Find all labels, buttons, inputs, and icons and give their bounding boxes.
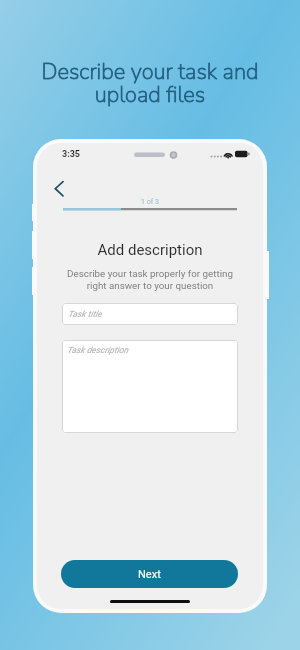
staticText: Task title bbox=[68, 309, 102, 319]
staticText: Describe your task and upload files bbox=[0, 57, 300, 110]
staticText: Task description bbox=[67, 345, 129, 355]
button[interactable]: Task title bbox=[62, 303, 238, 325]
staticText: Describe your task properly for getting … bbox=[37, 268, 263, 292]
staticText: 3:35 bbox=[62, 149, 81, 160]
staticText: 1 of 3 bbox=[37, 198, 263, 206]
staticText: Describe your task and upload files bbox=[0, 57, 300, 110]
button[interactable]: Back bbox=[47, 174, 75, 202]
button[interactable]: Task description bbox=[62, 340, 238, 433]
staticText: Next bbox=[138, 568, 161, 581]
button[interactable]: Next bbox=[61, 560, 238, 588]
staticText: Add description bbox=[37, 241, 263, 259]
